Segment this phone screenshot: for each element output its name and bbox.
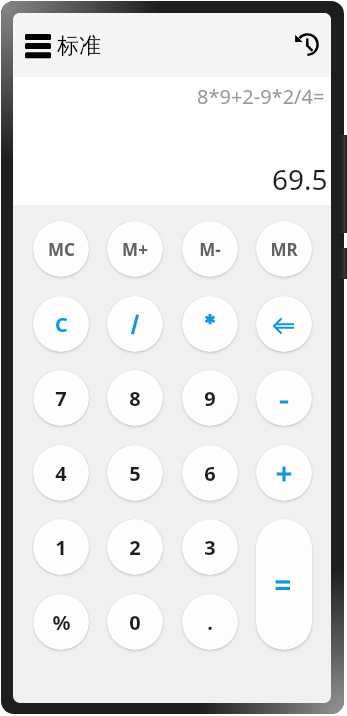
staticText: 1 bbox=[55, 534, 67, 561]
button[interactable]: 5 bbox=[107, 445, 163, 501]
button[interactable]: 0 bbox=[107, 594, 163, 650]
staticText: % bbox=[52, 609, 71, 636]
staticText: 8*9+2-9*2/4= bbox=[197, 83, 325, 110]
staticText: . bbox=[207, 609, 213, 636]
button[interactable]: 标准 bbox=[21, 28, 105, 64]
staticText: M- bbox=[199, 238, 221, 261]
staticText: 3 bbox=[204, 534, 216, 561]
staticText: 标准 bbox=[57, 32, 101, 60]
button[interactable]: 8 bbox=[107, 370, 163, 426]
staticText: 6 bbox=[204, 460, 216, 487]
button[interactable]: 9 bbox=[182, 370, 238, 426]
button[interactable]: Divide bbox=[107, 296, 163, 352]
button[interactable]: Multiply bbox=[182, 296, 238, 352]
button[interactable]: 1 bbox=[33, 519, 89, 575]
button[interactable]: 2 bbox=[107, 519, 163, 575]
button[interactable]: . bbox=[182, 594, 238, 650]
button[interactable]: MC bbox=[33, 221, 89, 277]
staticText: 8 bbox=[129, 385, 141, 412]
button[interactable]: C bbox=[33, 296, 89, 352]
button[interactable]: 6 bbox=[182, 445, 238, 501]
staticText: 0 bbox=[129, 609, 141, 636]
button[interactable]: 7 bbox=[33, 370, 89, 426]
button[interactable]: % bbox=[33, 594, 89, 650]
button[interactable]: 3 bbox=[182, 519, 238, 575]
staticText: C bbox=[55, 311, 68, 338]
button[interactable]: M- bbox=[182, 221, 238, 277]
staticText: 5 bbox=[129, 460, 141, 487]
staticText: M+ bbox=[122, 238, 148, 261]
staticText: MC bbox=[48, 238, 75, 261]
button[interactable]: Equals bbox=[256, 519, 312, 650]
button[interactable]: M+ bbox=[107, 221, 163, 277]
button[interactable]: Minus bbox=[256, 370, 312, 426]
button[interactable]: Backspace bbox=[256, 296, 312, 352]
staticText: 7 bbox=[55, 385, 67, 412]
staticText: 69.5 bbox=[272, 160, 328, 198]
button[interactable]: History bbox=[289, 27, 325, 63]
button[interactable]: 4 bbox=[33, 445, 89, 501]
staticText: 4 bbox=[55, 460, 67, 487]
staticText: 9 bbox=[204, 385, 216, 412]
button[interactable]: Plus bbox=[256, 445, 312, 501]
staticText: MR bbox=[270, 238, 298, 261]
button[interactable]: MR bbox=[256, 221, 312, 277]
staticText: 2 bbox=[129, 534, 141, 561]
